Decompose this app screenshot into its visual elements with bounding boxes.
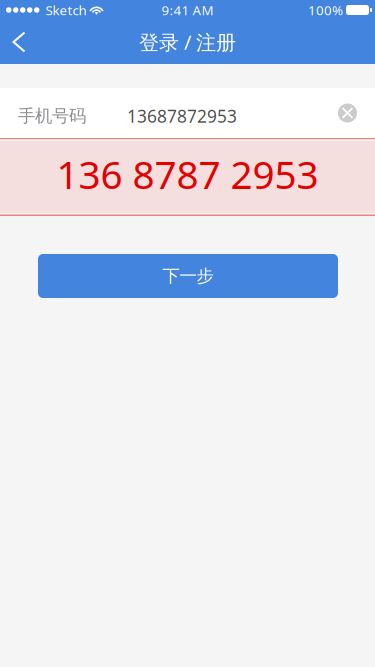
staticText: 100% (308, 1, 343, 19)
staticText: 手机号码 (18, 105, 86, 127)
staticText: 13687872953 (127, 104, 237, 127)
staticText: 9:41 AM (161, 1, 213, 19)
staticText: Sketch (45, 1, 86, 19)
staticText: 136 8787 2953 (56, 148, 318, 200)
staticText: 登录 / 注册 (139, 29, 236, 55)
button[interactable]: 下一步 (38, 254, 338, 298)
staticText: 下一步 (162, 265, 213, 287)
button[interactable]: Back (0, 20, 41, 64)
button[interactable]: Clear text (330, 89, 365, 136)
